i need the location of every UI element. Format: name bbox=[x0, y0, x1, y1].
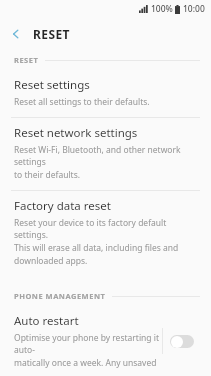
staticText: PHONE MANAGEMENT bbox=[14, 291, 106, 301]
staticText: RESET bbox=[33, 26, 70, 42]
button[interactable]: Reset network settings bbox=[0, 118, 211, 190]
staticText: Reset Wi-Fi, Bluetooth, and other networ… bbox=[14, 144, 199, 168]
button[interactable]: Auto restart bbox=[0, 306, 211, 376]
staticText: This will erase all data, including file… bbox=[14, 242, 179, 254]
button[interactable]: Back bbox=[0, 18, 32, 50]
staticText: 100% bbox=[151, 3, 173, 15]
staticText: to their defaults. bbox=[14, 169, 81, 181]
staticText: RESET bbox=[14, 55, 39, 65]
staticText: Reset all settings to their defaults. bbox=[14, 96, 150, 108]
staticText: matically once a week. Any unsaved data bbox=[14, 357, 162, 368]
staticText: Reset settings bbox=[14, 77, 90, 93]
staticText: 10:00 bbox=[183, 3, 205, 15]
button[interactable]: Factory data reset bbox=[0, 191, 211, 276]
staticText: Reset network settings bbox=[14, 125, 138, 141]
button[interactable]: Auto restart toggle bbox=[163, 326, 201, 356]
staticText: Factory data reset bbox=[14, 198, 111, 214]
staticText: Optimise your phone by restarting it aut… bbox=[14, 332, 162, 356]
staticText: Auto restart bbox=[14, 313, 79, 329]
staticText: Reset your device to its factory default… bbox=[14, 217, 199, 241]
staticText: downloaded apps. bbox=[14, 255, 88, 267]
button[interactable]: Reset settings bbox=[0, 70, 211, 117]
